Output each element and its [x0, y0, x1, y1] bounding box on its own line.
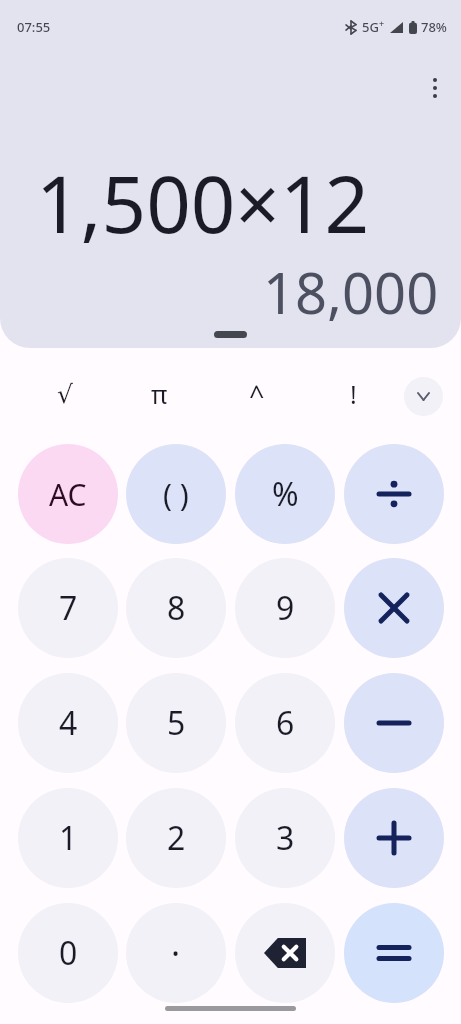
button[interactable]: 6 [235, 673, 335, 773]
staticText: 0 [59, 931, 78, 975]
staticText: + [379, 17, 385, 29]
button[interactable]: Delete [235, 903, 335, 1003]
button[interactable]: Divide [344, 444, 444, 544]
button[interactable]: √ [35, 364, 95, 424]
button[interactable]: ^ [227, 364, 287, 424]
button[interactable]: 7 [18, 558, 118, 658]
button[interactable]: More options [414, 67, 456, 109]
staticText: ^ [249, 376, 265, 413]
staticText: π [151, 377, 168, 411]
staticText: % [272, 472, 299, 516]
staticText: AC [49, 474, 87, 515]
staticText: √ [57, 380, 73, 409]
staticText: 9 [276, 586, 295, 630]
button[interactable]: 2 [126, 788, 226, 888]
staticText: 5 [167, 701, 186, 745]
staticText: 07:55 [17, 18, 51, 36]
button[interactable]: Equals [344, 903, 444, 1003]
staticText: 18,000 [263, 254, 439, 330]
staticText: ( ) [163, 474, 189, 515]
button[interactable]: Subtract [344, 673, 444, 773]
button[interactable]: 0 [18, 903, 118, 1003]
button[interactable]: 1 [18, 788, 118, 888]
staticText: 6 [276, 701, 295, 745]
staticText: 5G [362, 18, 379, 36]
button[interactable]: % [235, 444, 335, 544]
staticText: 7 [59, 586, 78, 630]
button[interactable]: π [129, 364, 189, 424]
button[interactable]: ( ) [126, 444, 226, 544]
button[interactable]: · [126, 903, 226, 1003]
staticText: 1 [59, 816, 78, 860]
staticText: 4 [59, 701, 78, 745]
staticText: 8 [167, 586, 186, 630]
button[interactable]: 5 [126, 673, 226, 773]
button[interactable]: 9 [235, 558, 335, 658]
button[interactable]: 8 [126, 558, 226, 658]
staticText: ! [350, 377, 357, 411]
button[interactable]: Add [344, 788, 444, 888]
staticText: 3 [276, 816, 295, 860]
staticText: 2 [167, 816, 186, 860]
button[interactable]: 4 [18, 673, 118, 773]
staticText: · [171, 930, 181, 976]
button[interactable]: ! [323, 364, 383, 424]
button[interactable]: Multiply [344, 558, 444, 658]
button[interactable]: AC [18, 444, 118, 544]
button[interactable]: 3 [235, 788, 335, 888]
button[interactable]: Collapse [404, 377, 443, 416]
staticText: 1,500×12 [36, 150, 370, 256]
staticText: 78% [421, 18, 447, 36]
